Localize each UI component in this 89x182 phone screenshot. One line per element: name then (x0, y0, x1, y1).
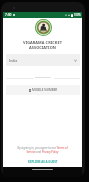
staticText: CONTINUE WITH (35, 76, 51, 79)
button[interactable]: EXPLORE AS A GUEST (28, 160, 58, 164)
button[interactable]: MOBILE NUMBER (6, 85, 80, 95)
staticText: 100% (74, 13, 81, 17)
staticText: India (9, 58, 18, 63)
staticText: VIGARAMA CRICKET ASSOCIATION (23, 40, 62, 50)
staticText: By signing in, you agree to our Terms of… (15, 146, 70, 154)
staticText: MOBILE NUMBER (32, 88, 58, 92)
button[interactable]: India (6, 54, 80, 66)
staticText: 7:50 (5, 13, 12, 17)
